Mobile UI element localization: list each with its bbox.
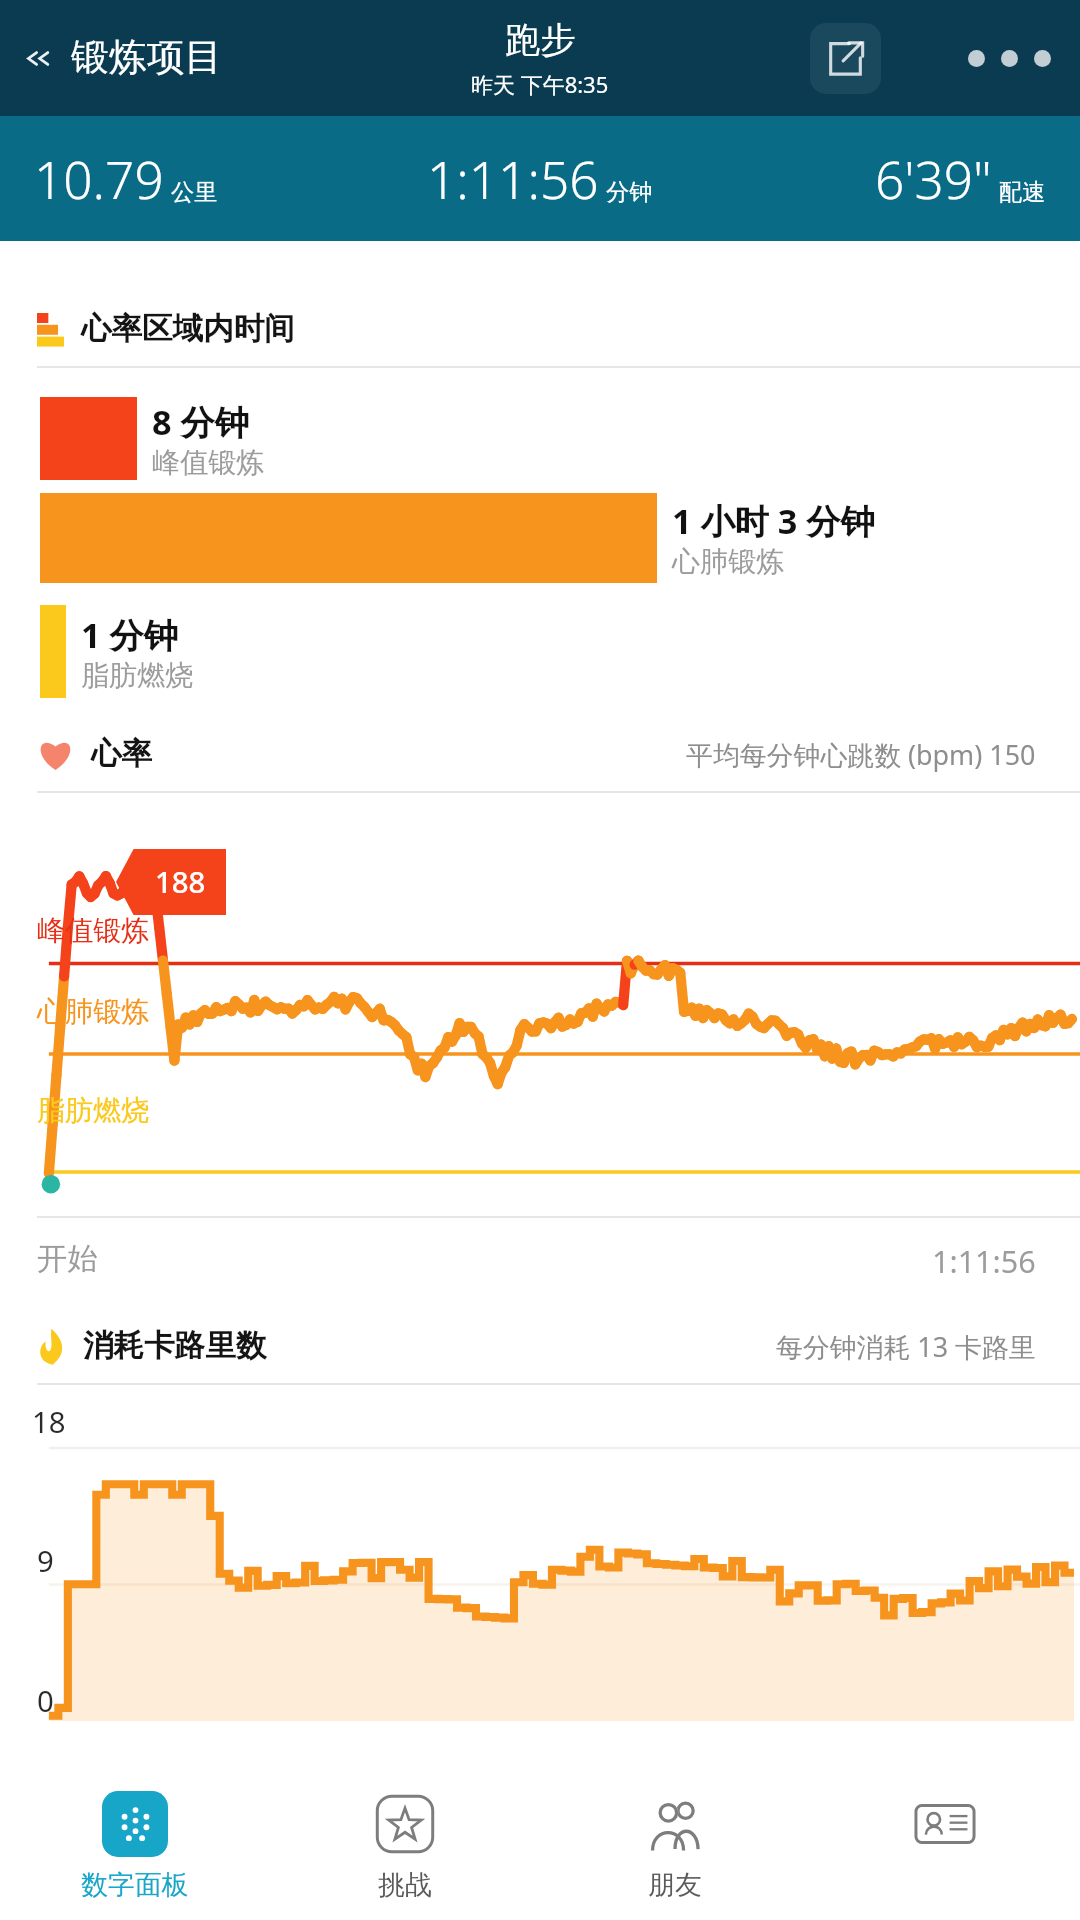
staticText: 平均每分钟心跳数 (bpm) 150 bbox=[686, 736, 1036, 773]
button[interactable]: 心率区域内时间 bbox=[37, 302, 1036, 356]
staticText: 6'39" bbox=[875, 144, 992, 214]
staticText: 分钟 bbox=[606, 178, 653, 207]
button[interactable]: 1 分钟 bbox=[0, 605, 1080, 698]
staticText: 公里 bbox=[171, 178, 218, 207]
button[interactable]: 1:11:56 bbox=[354, 116, 726, 241]
staticText: 跑步 bbox=[505, 18, 576, 63]
staticText: 昨天 下午8:35 bbox=[471, 69, 609, 99]
staticText: 18 bbox=[32, 1402, 66, 1442]
other: 朋友 bbox=[642, 1791, 708, 1857]
button[interactable]: 6'39" bbox=[726, 116, 1080, 241]
other: 个人资料 bbox=[912, 1791, 978, 1857]
button[interactable]: Share bbox=[810, 23, 881, 94]
staticText: 配速 bbox=[999, 178, 1046, 207]
staticText: 脂肪燃烧 bbox=[37, 1093, 150, 1128]
button[interactable]: 数字面板 bbox=[0, 1776, 270, 1920]
staticText: 峰值锻炼 bbox=[152, 445, 265, 480]
button[interactable]: 锻炼项目 bbox=[0, 22, 240, 94]
staticText: 开始 bbox=[37, 1240, 99, 1278]
staticText: 10.79 bbox=[34, 144, 164, 214]
staticText: 挑战 bbox=[378, 1868, 432, 1902]
other: 挑战 bbox=[372, 1791, 438, 1857]
staticText: 188 bbox=[155, 862, 206, 902]
staticText: 数字面板 bbox=[81, 1868, 189, 1902]
staticText: 1:11:56 bbox=[932, 1240, 1036, 1282]
staticText: 1:11:56 bbox=[427, 144, 599, 214]
button[interactable]: 心率 bbox=[37, 727, 1036, 781]
staticText: 锻炼项目 bbox=[71, 34, 223, 82]
staticText: 9 bbox=[37, 1541, 54, 1581]
button[interactable]: 消耗卡路里数 bbox=[37, 1319, 1036, 1373]
staticText: 脂肪燃烧 bbox=[81, 658, 194, 693]
staticText: 1 小时 3 分钟 bbox=[672, 497, 875, 544]
staticText: 心率区域内时间 bbox=[81, 310, 295, 348]
button[interactable]: 朋友 bbox=[540, 1776, 810, 1920]
staticText: 心肺锻炼 bbox=[37, 994, 150, 1029]
staticText: 朋友 bbox=[648, 1868, 702, 1902]
staticText: 心率 bbox=[91, 735, 153, 773]
staticText: 0 bbox=[37, 1681, 54, 1721]
staticText: 每分钟消耗 13 卡路里 bbox=[776, 1328, 1036, 1365]
staticText: 消耗卡路里数 bbox=[83, 1327, 267, 1365]
button[interactable]: 8 分钟 bbox=[0, 397, 1080, 480]
button[interactable]: 1 小时 3 分钟 bbox=[0, 493, 1080, 583]
staticText: 心肺锻炼 bbox=[672, 544, 785, 579]
button[interactable]: More options bbox=[939, 28, 1080, 89]
staticText: 1 分钟 bbox=[81, 611, 178, 658]
button[interactable]: 挑战 bbox=[270, 1776, 540, 1920]
button[interactable]: 10.79 bbox=[0, 116, 354, 241]
staticText: 峰值锻炼 bbox=[37, 913, 150, 948]
staticText: 8 分钟 bbox=[152, 398, 249, 445]
button[interactable]: 个人资料 bbox=[810, 1776, 1080, 1920]
